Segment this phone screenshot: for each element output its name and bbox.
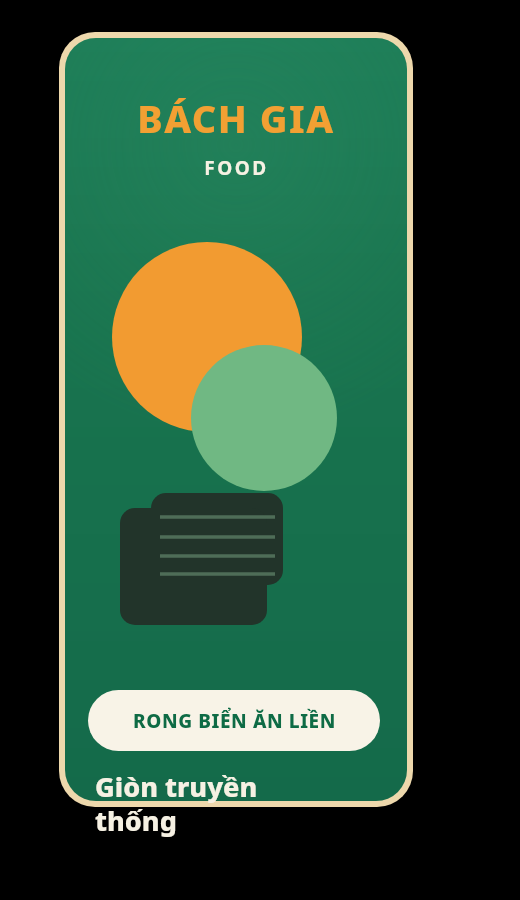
staticText: FOOD [204,155,269,181]
staticText: RONG BIỂN ĂN LIỀN [133,708,336,734]
staticText: BÁCH GIA [137,92,335,144]
button[interactable]: BÁCH GIA [65,38,407,801]
staticText: Giòn truyền thống [95,768,295,839]
button[interactable]: RONG BIỂN ĂN LIỀN [88,690,380,751]
other: Seaweed snack illustration [65,38,407,801]
